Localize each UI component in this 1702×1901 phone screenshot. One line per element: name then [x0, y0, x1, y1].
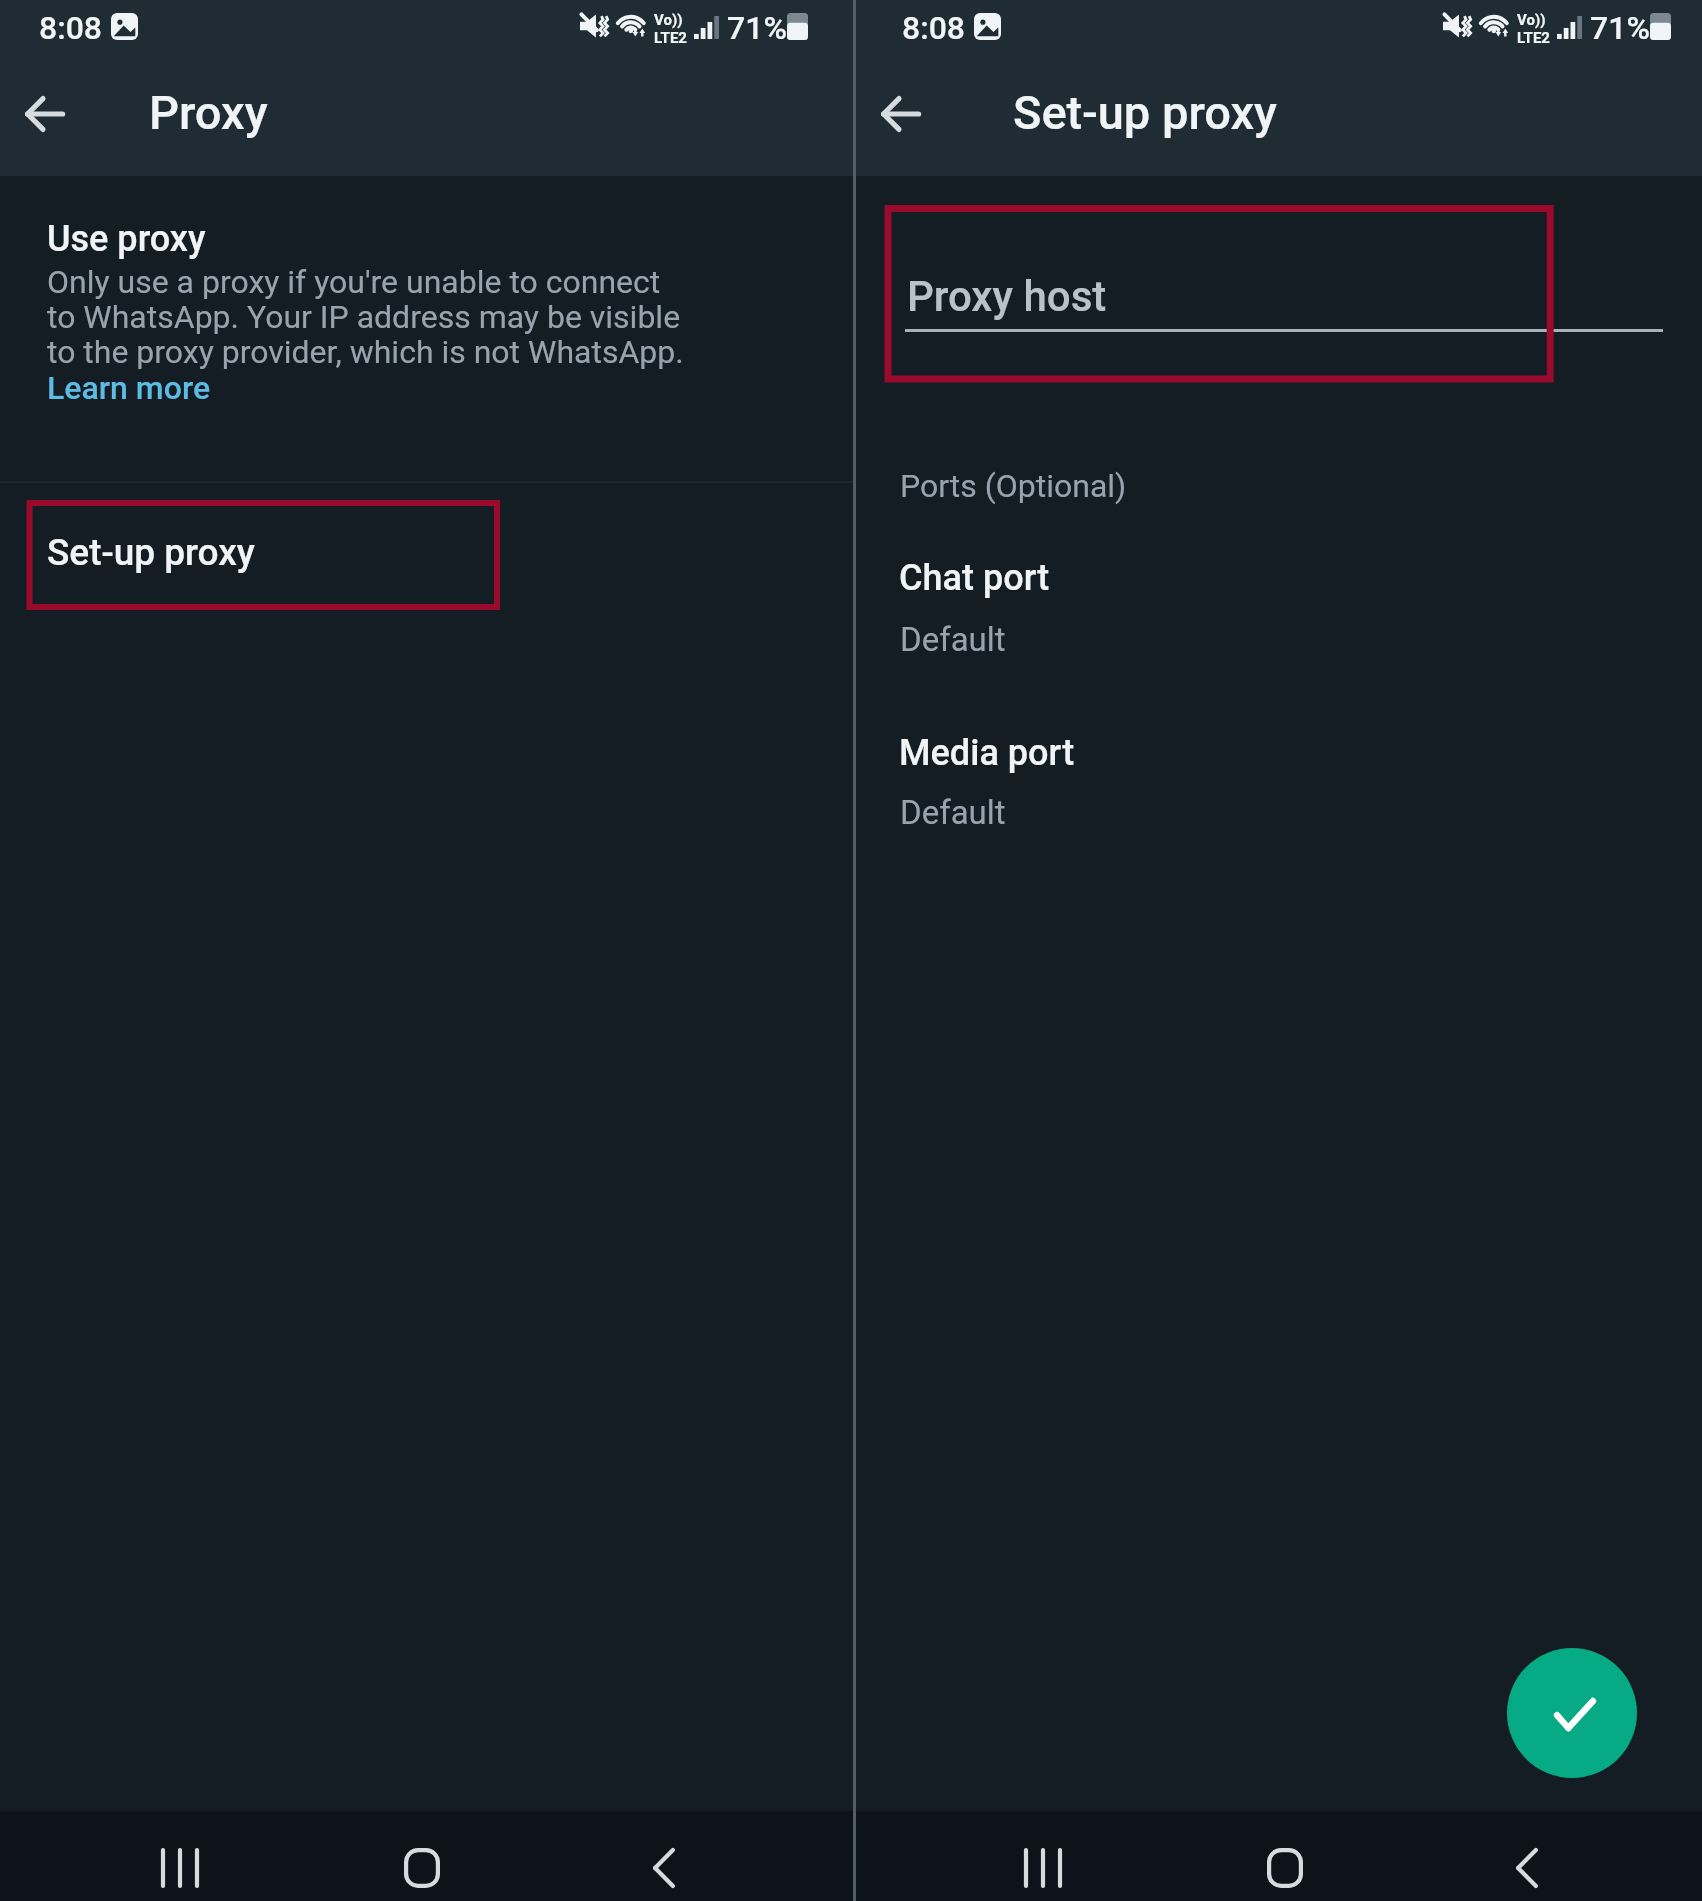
button[interactable]: Save proxy	[1507, 1648, 1637, 1778]
staticText: Set-up proxy	[1013, 85, 1277, 140]
staticText: 8:08	[39, 9, 103, 47]
button[interactable]: Navigate up	[1, 74, 88, 154]
button[interactable]: Back	[1489, 1830, 1565, 1901]
staticText: Proxy	[149, 85, 268, 140]
staticText: Use proxy	[47, 218, 206, 260]
button[interactable]: Back	[626, 1830, 702, 1901]
staticText: 8:08	[902, 9, 966, 47]
staticText: LTE2	[1517, 29, 1550, 47]
staticText: Proxy host	[907, 272, 1107, 321]
button[interactable]: Media port	[856, 705, 1702, 845]
staticText: Default	[900, 793, 1006, 832]
staticText: Chat port	[899, 557, 1050, 599]
button[interactable]: Recent apps	[142, 1830, 218, 1901]
staticText: Default	[900, 620, 1006, 659]
button[interactable]: Navigate up	[857, 74, 944, 154]
button[interactable]: Set-up proxy	[0, 483, 853, 618]
staticText: Ports (Optional)	[900, 467, 1127, 505]
button[interactable]: Proxy host	[884, 205, 1674, 383]
staticText: 71%	[1590, 9, 1650, 47]
button[interactable]: Home	[384, 1830, 460, 1901]
button[interactable]: Home	[1247, 1830, 1323, 1901]
button[interactable]: Learn more	[47, 369, 211, 407]
button[interactable]: Chat port	[856, 530, 1702, 670]
staticText: LTE2	[654, 29, 687, 47]
staticText: Media port	[899, 732, 1075, 774]
button[interactable]: Recent apps	[1005, 1830, 1081, 1901]
staticText: Vo))	[1517, 11, 1546, 29]
staticText: 71%	[727, 9, 787, 47]
staticText: Vo))	[654, 11, 683, 29]
staticText: Only use a proxy if you're unable to con…	[47, 265, 684, 370]
staticText: Set-up proxy	[47, 531, 255, 574]
